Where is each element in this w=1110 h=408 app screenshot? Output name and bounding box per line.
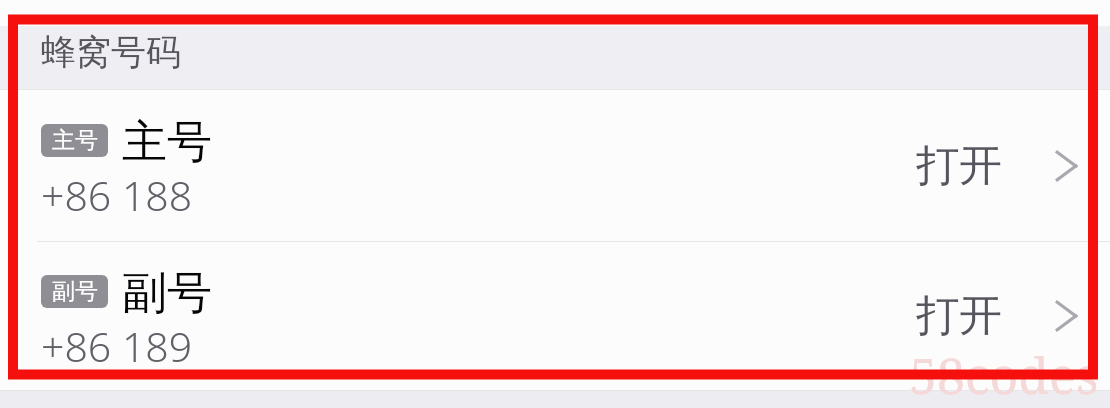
- staticText: +86 188: [41, 167, 193, 223]
- button[interactable]: 主号: [0, 90, 1110, 241]
- other: Open: [1056, 301, 1077, 331]
- staticText: +86 189: [41, 318, 193, 374]
- staticText: 主号: [122, 114, 212, 171]
- staticText: 打开: [916, 139, 1002, 193]
- other: Open: [1056, 151, 1077, 181]
- staticText: 副号: [122, 265, 212, 322]
- staticText: 58codes: [909, 341, 1099, 408]
- button[interactable]: 副号: [0, 242, 1110, 390]
- staticText: 打开: [916, 289, 1002, 343]
- staticText: 蜂窝号码: [41, 30, 181, 74]
- staticText: 主号: [52, 126, 98, 155]
- staticText: 副号: [52, 277, 98, 306]
